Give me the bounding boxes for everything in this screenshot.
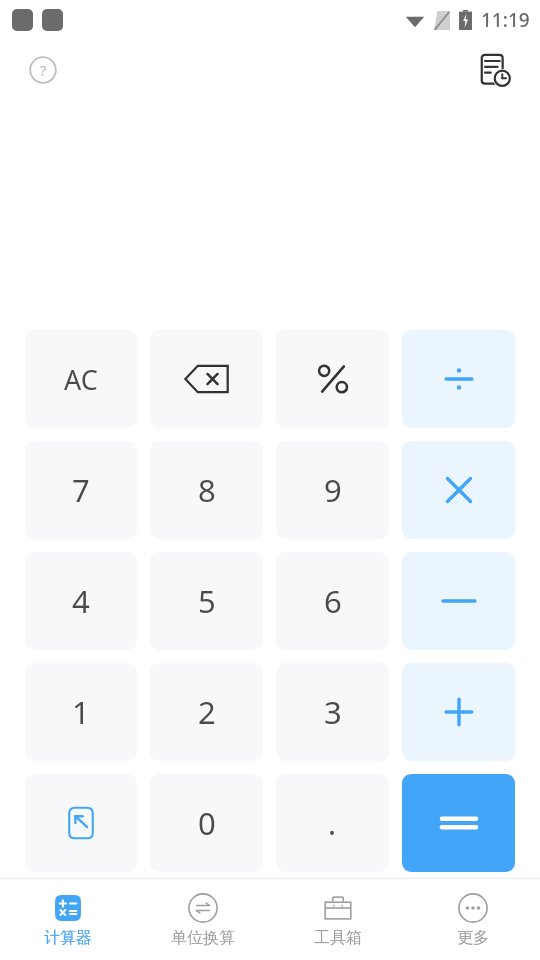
button[interactable]: Backspace [150,330,263,428]
button[interactable]: History [472,48,516,92]
button[interactable]: 5 [150,552,263,650]
button[interactable]: 2 [150,663,263,761]
button[interactable]: 更多 [405,879,540,960]
staticText: 2 [198,691,216,733]
staticText: ? [40,60,47,80]
button[interactable]: Help [26,53,60,87]
button[interactable]: 9 [276,441,389,539]
staticText: 6 [324,580,342,622]
button[interactable]: 8 [150,441,263,539]
button[interactable]: Multiply [402,441,515,539]
staticText: AC [64,361,98,398]
button[interactable]: 1 [25,663,137,761]
staticText: 3 [324,691,342,733]
button[interactable]: Add [402,663,515,761]
staticText: 11:19 [481,7,530,33]
button[interactable]: 计算器 [0,879,135,960]
staticText: 计算器 [44,928,92,948]
button[interactable]: 工具箱 [270,879,405,960]
staticText: 工具箱 [314,928,362,948]
button[interactable]: 7 [25,441,137,539]
staticText: 7 [72,469,90,511]
staticText: 9 [324,469,342,511]
button[interactable]: Subtract [402,552,515,650]
button[interactable]: Equals [402,774,515,872]
button[interactable]: 0 [150,774,263,872]
staticText: 1 [72,691,90,733]
button[interactable]: Scientific mode [25,774,137,872]
staticText: 0 [198,802,216,844]
staticText: 单位换算 [171,928,235,948]
staticText: 更多 [457,928,489,948]
button[interactable] [276,330,389,428]
button[interactable]: 单位换算 [135,879,270,960]
button[interactable]: Divide [402,330,515,428]
button[interactable]: . [276,774,389,872]
button[interactable]: 3 [276,663,389,761]
staticText: 8 [198,469,216,511]
staticText: 4 [72,580,90,622]
staticText: . [328,803,337,844]
button[interactable]: AC [25,330,137,428]
staticText: 5 [198,580,216,622]
button[interactable]: 4 [25,552,137,650]
button[interactable]: 6 [276,552,389,650]
